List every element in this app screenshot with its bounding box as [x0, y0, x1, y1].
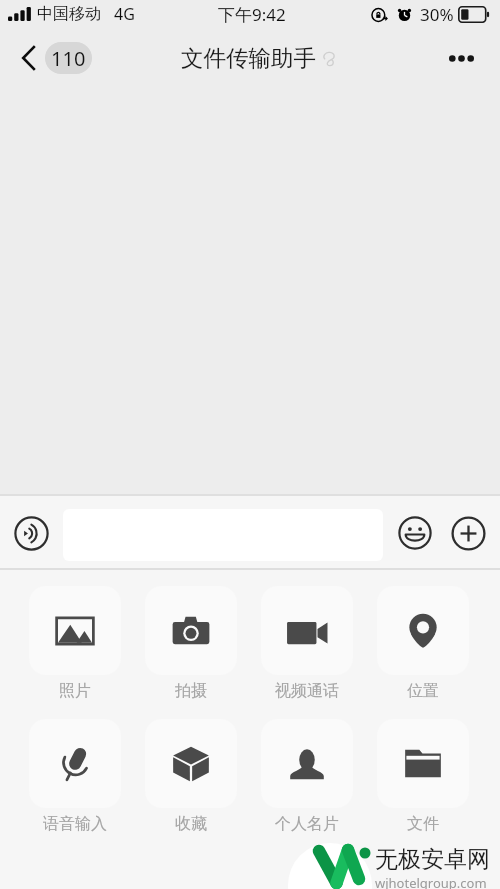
button[interactable]: More options — [441, 47, 482, 70]
staticText: 下午9:42 — [218, 3, 286, 26]
staticText: 个人名片 — [275, 814, 339, 834]
staticText: 拍摄 — [175, 681, 207, 701]
staticText: 中国移动 — [37, 4, 101, 24]
button[interactable]: 文件 — [377, 719, 469, 834]
staticText: 4G — [114, 3, 135, 25]
staticText: 语音输入 — [43, 814, 107, 834]
button[interactable]: Voice input — [12, 514, 50, 552]
staticText: 收藏 — [175, 814, 207, 834]
button[interactable]: 个人名片 — [261, 719, 353, 834]
button[interactable]: 收藏 — [145, 719, 237, 834]
button[interactable]: Emoji — [396, 514, 434, 552]
button[interactable]: 位置 — [377, 586, 469, 701]
staticText: 位置 — [407, 681, 439, 701]
button[interactable]: 照片 — [29, 586, 121, 701]
staticText: 照片 — [59, 681, 91, 701]
staticText: 文件 — [407, 814, 439, 834]
staticText: 110 — [51, 45, 86, 72]
staticText: wjhotelgroup.com — [375, 874, 487, 889]
button[interactable]: More — [449, 514, 487, 552]
staticText: 文件传输助手 — [181, 44, 316, 72]
staticText: 视频通话 — [275, 681, 339, 701]
button[interactable]: 语音输入 — [29, 719, 121, 834]
staticText: 无极安卓网 — [375, 845, 490, 874]
button[interactable]: 视频通话 — [261, 586, 353, 701]
staticText: 30% — [420, 3, 454, 26]
button[interactable]: Back — [8, 36, 98, 80]
button[interactable]: 拍摄 — [145, 586, 237, 701]
